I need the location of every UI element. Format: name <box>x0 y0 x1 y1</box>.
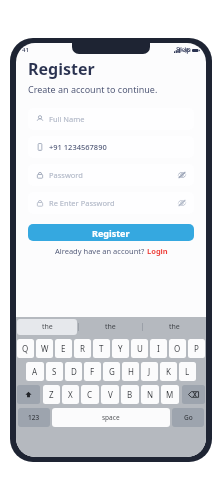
button[interactable]: Q <box>17 339 34 358</box>
button[interactable]: P <box>188 339 205 358</box>
staticText: +91 1234567890 <box>49 142 107 152</box>
button[interactable]: L <box>179 362 196 381</box>
button[interactable]: Full Name <box>28 108 194 130</box>
staticText: the <box>105 322 116 332</box>
button[interactable]: Shift <box>17 385 40 404</box>
staticText: Z <box>49 389 54 400</box>
staticText: W <box>41 343 49 354</box>
button[interactable]: T <box>93 339 110 358</box>
button[interactable]: space <box>52 408 170 427</box>
staticText: C <box>87 389 93 400</box>
button[interactable]: Go <box>172 408 204 427</box>
staticText: the <box>42 322 53 332</box>
button[interactable]: Register <box>28 224 194 241</box>
button[interactable]: I <box>150 339 167 358</box>
staticText: U <box>137 343 143 354</box>
staticText: Register <box>28 58 95 80</box>
button[interactable]: +91 1234567890 <box>28 136 194 158</box>
button[interactable]: V <box>101 385 119 404</box>
button[interactable]: W <box>36 339 53 358</box>
staticText: P <box>194 343 199 354</box>
button[interactable]: G <box>103 362 120 381</box>
button[interactable]: the <box>80 319 141 335</box>
button[interactable]: Backspace <box>182 385 205 404</box>
staticText: E <box>61 343 66 354</box>
staticText: X <box>68 389 73 400</box>
staticText: Create an account to continue. <box>28 83 158 95</box>
staticText: Already have an account? <box>55 246 147 256</box>
staticText: space <box>102 413 120 422</box>
staticText: Go <box>184 413 193 422</box>
staticText: K <box>166 366 171 377</box>
staticText: I <box>157 343 160 354</box>
button[interactable]: Y <box>112 339 129 358</box>
staticText: O <box>174 343 181 354</box>
button[interactable]: C <box>81 385 99 404</box>
button[interactable]: Re Enter Password <box>28 192 194 214</box>
button[interactable]: X <box>62 385 79 404</box>
staticText: Q <box>22 343 29 354</box>
staticText: the <box>169 322 180 332</box>
staticText: L <box>185 366 190 377</box>
button[interactable]: D <box>65 362 82 381</box>
staticText: Login <box>147 246 168 256</box>
button[interactable]: the <box>17 319 77 335</box>
button[interactable]: O <box>169 339 186 358</box>
button[interactable]: Show password <box>115 192 186 214</box>
staticText: B <box>127 389 133 400</box>
button[interactable]: J <box>141 362 158 381</box>
button[interactable]: M <box>161 385 179 404</box>
button[interactable]: Password <box>28 164 194 186</box>
button[interactable]: Show password <box>83 164 186 186</box>
button[interactable]: U <box>131 339 148 358</box>
staticText: Re Enter Password <box>49 198 115 208</box>
staticText: R <box>80 343 85 354</box>
staticText: Full Name <box>49 114 85 124</box>
button[interactable]: B <box>121 385 139 404</box>
button[interactable]: F <box>84 362 101 381</box>
staticText: S <box>52 366 57 377</box>
staticText: N <box>147 389 154 400</box>
button[interactable]: K <box>160 362 177 381</box>
button[interactable]: S <box>46 362 63 381</box>
button[interactable]: Skip <box>173 43 194 55</box>
button[interactable]: 123 <box>18 408 50 427</box>
staticText: H <box>128 366 134 377</box>
staticText: A <box>32 366 38 377</box>
staticText: V <box>108 389 113 400</box>
staticText: T <box>99 343 104 354</box>
button[interactable]: A <box>26 362 44 381</box>
staticText: J <box>148 366 151 377</box>
button[interactable]: Z <box>43 385 60 404</box>
button[interactable]: N <box>141 385 159 404</box>
staticText: Register <box>92 227 130 239</box>
staticText: 41 <box>22 46 29 54</box>
staticText: Skip <box>176 44 191 54</box>
button[interactable]: H <box>122 362 139 381</box>
staticText: G <box>109 366 115 377</box>
staticText: D <box>71 366 77 377</box>
staticText: F <box>90 366 95 377</box>
staticText: Y <box>118 343 123 354</box>
button[interactable]: Login <box>147 246 168 256</box>
staticText: Password <box>49 170 83 180</box>
button[interactable]: R <box>74 339 91 358</box>
button[interactable]: E <box>55 339 72 358</box>
staticText: 123 <box>28 413 40 422</box>
staticText: M <box>166 389 174 400</box>
button[interactable]: the <box>144 319 205 335</box>
